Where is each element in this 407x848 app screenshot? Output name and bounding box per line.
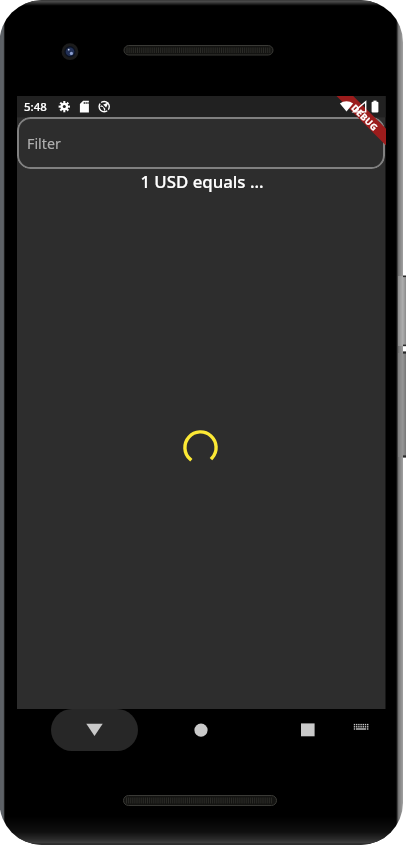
button[interactable]: Recent apps [292, 714, 324, 746]
button[interactable]: Keyboard [345, 714, 377, 746]
button[interactable]: Filter [17, 117, 385, 169]
staticText: DEBUG [349, 101, 381, 133]
staticText: 1 USD equals ... [140, 170, 264, 192]
staticText: Filter [27, 134, 61, 153]
button[interactable]: Home [185, 714, 217, 746]
staticText: 5:48 [24, 99, 47, 115]
button[interactable]: Back [51, 709, 138, 751]
